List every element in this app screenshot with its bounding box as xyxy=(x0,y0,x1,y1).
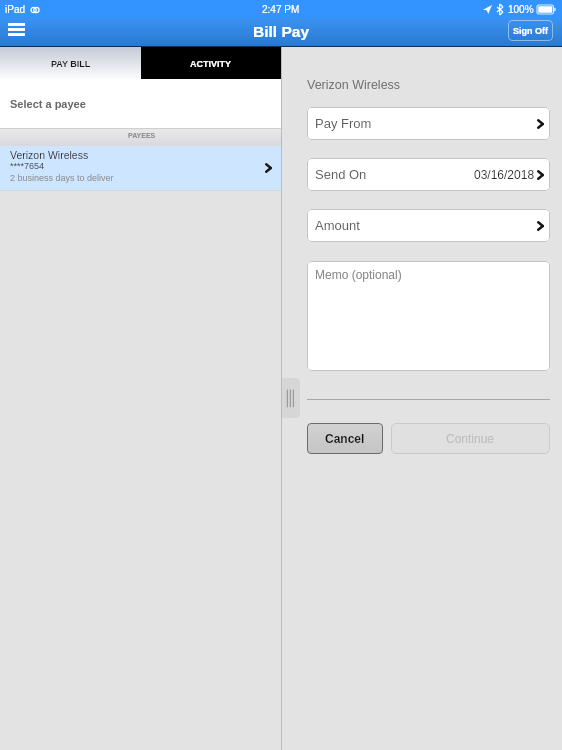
staticText: 2:47 PM xyxy=(262,4,300,15)
staticText: 03/16/2018 xyxy=(474,168,535,181)
staticText: Bill Pay xyxy=(253,23,309,40)
button[interactable]: Resize panel xyxy=(282,378,300,418)
staticText: Continue xyxy=(446,432,495,445)
button[interactable]: Cancel xyxy=(307,423,383,454)
staticText: Verizon Wireless xyxy=(307,78,401,92)
button[interactable]: ACTIVITY xyxy=(141,47,281,79)
staticText: Sign Off xyxy=(513,26,548,36)
button[interactable]: PAY BILL xyxy=(0,47,141,79)
staticText: Memo (optional) xyxy=(315,268,402,281)
staticText: Amount xyxy=(315,218,360,233)
button[interactable]: Verizon Wireless xyxy=(0,146,281,190)
staticText: ACTIVITY xyxy=(190,59,232,69)
staticText: Verizon Wireless xyxy=(10,149,89,161)
button[interactable]: Continue xyxy=(391,423,550,454)
staticText: Select a payee xyxy=(10,98,86,110)
staticText: PAYEES xyxy=(128,132,156,140)
button[interactable]: Menu xyxy=(0,18,34,47)
staticText: Pay From xyxy=(315,116,372,131)
staticText: Cancel xyxy=(325,432,365,445)
button[interactable]: Pay From xyxy=(307,107,550,140)
staticText: 100% xyxy=(508,4,534,15)
staticText: ****7654 xyxy=(10,161,45,171)
staticText: Send On xyxy=(315,167,367,182)
staticText: 2 business days to deliver xyxy=(10,173,114,183)
button[interactable]: Amount xyxy=(307,209,550,242)
staticText: PAY BILL xyxy=(51,59,91,69)
button[interactable]: Sign Off xyxy=(508,20,553,41)
button[interactable]: Memo (optional) xyxy=(307,261,550,371)
button[interactable]: Send On xyxy=(307,158,550,191)
staticText: iPad xyxy=(5,4,26,15)
